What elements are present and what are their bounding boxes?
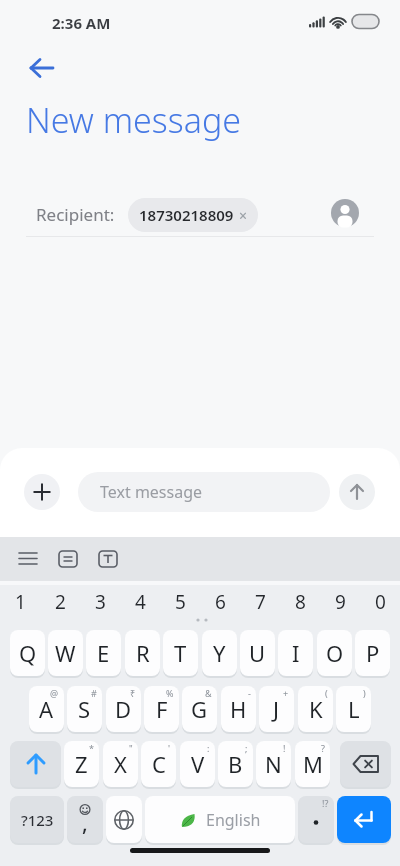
staticText: U [249, 638, 266, 668]
button[interactable] [10, 741, 61, 787]
staticText: D [115, 694, 132, 724]
button[interactable]: B [218, 741, 253, 787]
staticText: F [156, 694, 168, 724]
staticText: % [166, 687, 174, 699]
staticText: 4 [135, 589, 146, 614]
staticText: S [78, 694, 91, 724]
button[interactable]: !? [298, 796, 334, 843]
staticText: - [248, 687, 251, 699]
staticText: 2:36 AM [52, 13, 111, 33]
button[interactable]: F [144, 686, 179, 732]
staticText: K [309, 694, 323, 724]
staticText: B [228, 749, 243, 779]
button[interactable]: V [180, 741, 215, 787]
button[interactable]: Y [202, 630, 237, 676]
staticText: ! [283, 742, 286, 754]
staticText: W [55, 638, 76, 668]
staticText: Z [75, 749, 88, 779]
button[interactable]: Q [10, 630, 45, 676]
staticText: H [230, 694, 247, 724]
button[interactable]: I [278, 630, 313, 676]
button[interactable]: R [125, 630, 160, 676]
staticText: J [273, 694, 280, 724]
staticText: A [39, 694, 54, 724]
button[interactable]: K [298, 686, 333, 732]
button[interactable] [22, 50, 62, 86]
staticText: New message [26, 97, 242, 143]
button[interactable] [331, 199, 359, 227]
button[interactable]: H [221, 686, 256, 732]
button[interactable]: Z [64, 741, 99, 787]
button[interactable]: 0 [360, 589, 400, 614]
button[interactable]: E [86, 630, 121, 676]
button[interactable]: 2 [40, 589, 80, 614]
button[interactable]: 8 [280, 589, 320, 614]
button[interactable]: 18730218809 [128, 198, 258, 232]
staticText: 1 [15, 589, 26, 614]
staticText: : [207, 742, 210, 754]
staticText: V [191, 749, 205, 779]
staticText: 6 [215, 589, 226, 614]
staticText: Q [19, 638, 37, 668]
button[interactable]: U [240, 630, 275, 676]
staticText: & [205, 687, 212, 699]
button[interactable]: J [259, 686, 294, 732]
button[interactable]: S [67, 686, 102, 732]
staticText: X [114, 749, 127, 779]
button[interactable] [340, 741, 391, 787]
staticText: " [129, 742, 133, 754]
button[interactable]: D [106, 686, 141, 732]
button[interactable]: 9 [320, 589, 360, 614]
staticText: ? [321, 742, 325, 754]
button[interactable]: 4 [120, 589, 160, 614]
staticText: I [292, 638, 300, 668]
staticText: , [82, 809, 88, 838]
button[interactable] [339, 474, 375, 510]
staticText: * [89, 742, 94, 754]
button[interactable]: 1 [0, 589, 40, 614]
button[interactable]: G [182, 686, 217, 732]
staticText: T [174, 638, 187, 668]
button[interactable] [337, 796, 391, 843]
button[interactable]: T [163, 630, 198, 676]
staticText: 7 [255, 589, 266, 614]
staticText: ) [363, 687, 366, 699]
button[interactable]: 5 [160, 589, 200, 614]
button[interactable]: 7 [240, 589, 280, 614]
button[interactable]: ?123 [10, 796, 64, 843]
staticText: 9 [335, 589, 346, 614]
button[interactable]: English [145, 796, 295, 843]
staticText: × [239, 206, 248, 225]
staticText: L [348, 694, 360, 724]
button[interactable]: Text message [78, 472, 330, 512]
button[interactable]: , [67, 796, 103, 843]
button[interactable]: A [29, 686, 64, 732]
button[interactable] [106, 796, 142, 843]
button[interactable]: W [48, 630, 83, 676]
button[interactable]: O [317, 630, 352, 676]
staticText: Y [213, 638, 226, 668]
button[interactable]: X [103, 741, 138, 787]
staticText: N [265, 749, 282, 779]
staticText: @ [50, 687, 59, 699]
button[interactable]: L [336, 686, 371, 732]
button[interactable]: M [295, 741, 330, 787]
staticText: ' [168, 742, 171, 754]
staticText: !? [322, 797, 329, 809]
staticText: C [152, 749, 166, 779]
staticText: 0 [375, 589, 386, 614]
staticText: R [136, 638, 150, 668]
staticText: 8 [295, 589, 306, 614]
staticText: G [191, 694, 208, 724]
button[interactable]: 3 [80, 589, 120, 614]
button[interactable]: C [141, 741, 176, 787]
button[interactable]: 6 [200, 589, 240, 614]
staticText: ?123 [21, 810, 54, 830]
staticText: ( [325, 687, 328, 699]
staticText: 2 [55, 589, 66, 614]
staticText: # [91, 687, 97, 699]
button[interactable]: P [355, 630, 390, 676]
button[interactable] [24, 474, 60, 510]
staticText: + [283, 687, 289, 699]
button[interactable]: N [256, 741, 291, 787]
